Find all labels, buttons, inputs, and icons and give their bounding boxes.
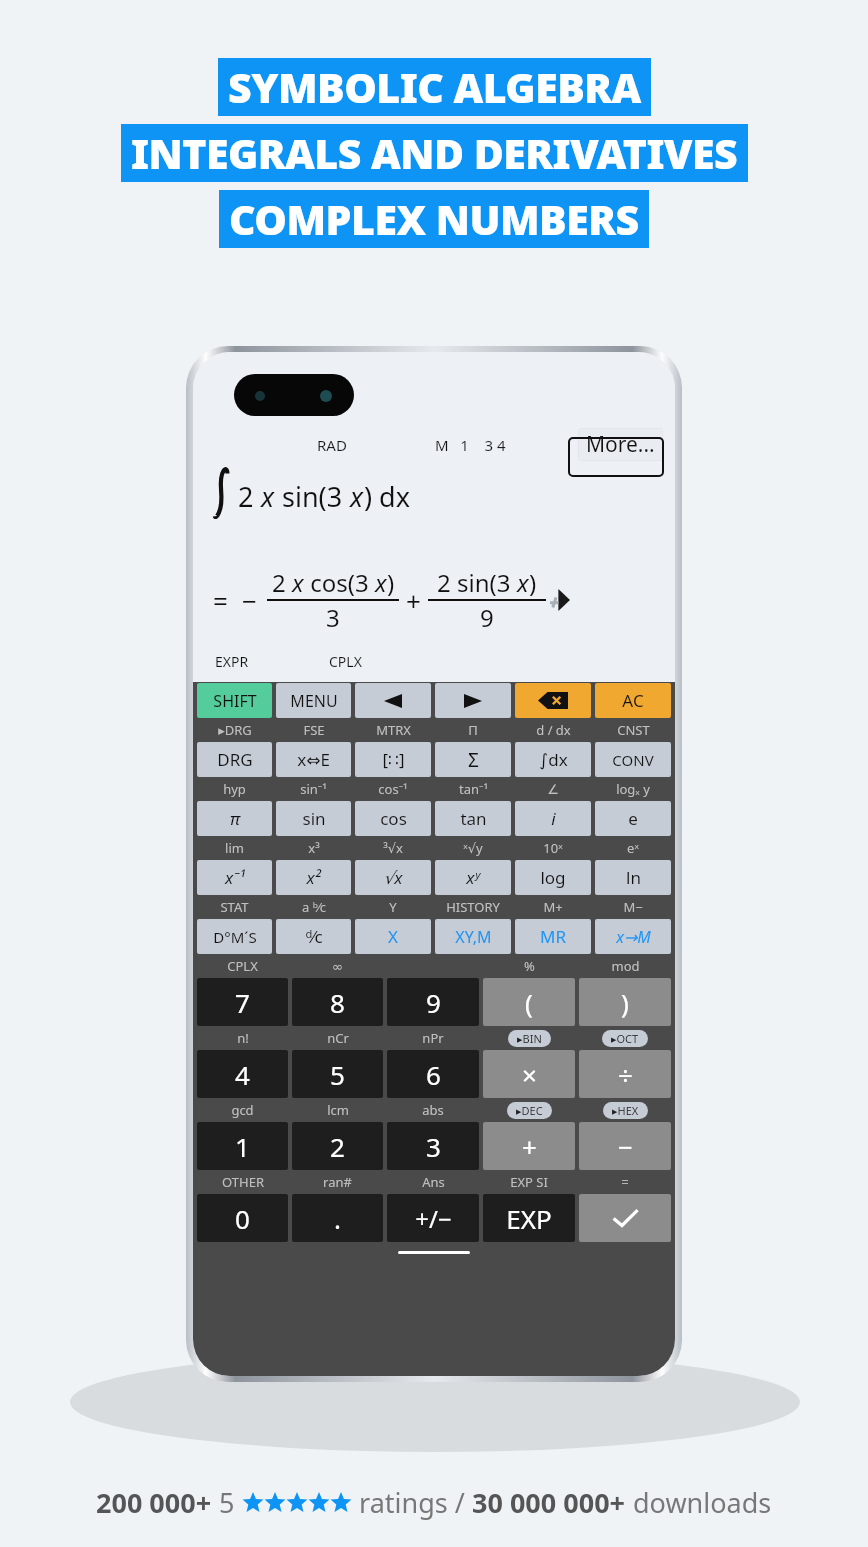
- staticText: 2: [330, 1129, 345, 1164]
- button[interactable]: e: [595, 801, 671, 836]
- button[interactable]: xʸ: [435, 860, 511, 895]
- button[interactable]: D°M´S: [197, 919, 272, 954]
- staticText: Σ: [468, 747, 479, 773]
- staticText: INTEGRALS AND DERIVATIVES: [131, 125, 738, 181]
- button[interactable]: MENU: [276, 683, 351, 718]
- button[interactable]: i: [515, 801, 591, 836]
- staticText: =: [621, 1173, 629, 1191]
- staticText: CPLX: [329, 652, 362, 671]
- staticText: EXP: [506, 1201, 552, 1236]
- staticText: cos: [380, 807, 407, 830]
- staticText: ln: [626, 866, 641, 889]
- staticText: x→M: [616, 926, 651, 948]
- button[interactable]: 8: [292, 978, 383, 1026]
- staticText: .: [334, 1201, 341, 1236]
- staticText: M−: [623, 898, 643, 916]
- staticText: ): [529, 566, 537, 599]
- staticText: (: [525, 985, 533, 1020]
- button[interactable]: −: [579, 1122, 671, 1170]
- button[interactable]: ÷: [579, 1050, 671, 1098]
- staticText: 5: [219, 1484, 242, 1521]
- button[interactable]: ): [579, 978, 671, 1026]
- button[interactable]: SHIFT: [197, 683, 272, 718]
- button[interactable]: 6: [387, 1050, 479, 1098]
- staticText: log: [540, 866, 566, 889]
- button[interactable]: sin: [276, 801, 351, 836]
- staticText: M 1 3 4: [435, 435, 506, 455]
- button[interactable]: Delete: [515, 683, 591, 718]
- button[interactable]: 0: [197, 1194, 288, 1242]
- button[interactable]: (: [483, 978, 575, 1026]
- button[interactable]: x²: [276, 860, 351, 895]
- button[interactable]: .: [292, 1194, 383, 1242]
- staticText: CPLX: [227, 957, 258, 975]
- staticText: x: [375, 566, 387, 599]
- button[interactable]: Right: [435, 683, 511, 718]
- staticText: STAT: [220, 898, 249, 916]
- button[interactable]: Left: [355, 683, 431, 718]
- staticText: OTHER: [222, 1173, 264, 1191]
- staticText: M+: [543, 898, 563, 916]
- button[interactable]: 7: [197, 978, 288, 1026]
- staticText: 2 sin(3: [437, 566, 517, 599]
- button[interactable]: ᵈ⁄c: [276, 919, 351, 954]
- button[interactable]: x→M: [595, 919, 671, 954]
- staticText: 3: [326, 601, 340, 634]
- staticText: +: [406, 583, 421, 618]
- staticText: 1: [235, 1129, 250, 1164]
- staticText: nCr: [327, 1029, 349, 1047]
- staticText: −: [242, 583, 257, 618]
- button[interactable]: +: [483, 1122, 575, 1170]
- staticText: cos⁻¹: [378, 780, 408, 798]
- button[interactable]: CONV: [595, 742, 671, 777]
- button[interactable]: ×: [483, 1050, 575, 1098]
- staticText: Π: [468, 721, 478, 739]
- button[interactable]: 1: [197, 1122, 288, 1170]
- button[interactable]: AC: [595, 683, 671, 718]
- button[interactable]: x⇔E: [276, 742, 351, 777]
- staticText: More...: [586, 430, 655, 459]
- staticText: ▸DRG: [218, 721, 252, 739]
- staticText: EXPR: [215, 652, 249, 671]
- staticText: cos(3: [304, 566, 375, 599]
- button[interactable]: tan: [435, 801, 511, 836]
- staticText: 5: [330, 1057, 345, 1092]
- button[interactable]: π: [197, 801, 272, 836]
- staticText: π: [230, 807, 240, 830]
- staticText: x: [517, 566, 529, 599]
- button[interactable]: √x: [355, 860, 431, 895]
- staticText: FSE: [303, 721, 325, 739]
- staticText: i: [551, 807, 556, 830]
- button[interactable]: EXP: [483, 1194, 575, 1242]
- button[interactable]: +/−: [387, 1194, 479, 1242]
- button[interactable]: X: [355, 919, 431, 954]
- staticText: downloads: [633, 1484, 772, 1521]
- button[interactable]: DRG: [197, 742, 272, 777]
- button[interactable]: log: [515, 860, 591, 895]
- staticText: ˣ√y: [463, 839, 483, 857]
- staticText: lim: [225, 839, 244, 857]
- staticText: −: [618, 1129, 633, 1164]
- button[interactable]: 4: [197, 1050, 288, 1098]
- button[interactable]: MR: [515, 919, 591, 954]
- button[interactable]: Σ: [435, 742, 511, 777]
- button[interactable]: ln: [595, 860, 671, 895]
- button[interactable]: More...: [579, 429, 662, 460]
- staticText: ran#: [323, 1173, 352, 1191]
- staticText: COMPLEX NUMBERS: [229, 191, 639, 247]
- button[interactable]: 2: [292, 1122, 383, 1170]
- button[interactable]: 5: [292, 1050, 383, 1098]
- button[interactable]: x⁻¹: [197, 860, 272, 895]
- button[interactable]: Equals: [579, 1194, 671, 1242]
- staticText: 9: [426, 985, 441, 1020]
- button[interactable]: [∷]: [355, 742, 431, 777]
- button[interactable]: 9: [387, 978, 479, 1026]
- button[interactable]: Next: [550, 589, 570, 611]
- button[interactable]: XY,M: [435, 919, 511, 954]
- staticText: x⇔E: [297, 748, 330, 771]
- staticText: a ᵇ⁄c: [302, 898, 326, 916]
- button[interactable]: 3: [387, 1122, 479, 1170]
- button[interactable]: cos: [355, 801, 431, 836]
- staticText: nPr: [422, 1029, 444, 1047]
- button[interactable]: ∫dx: [515, 742, 591, 777]
